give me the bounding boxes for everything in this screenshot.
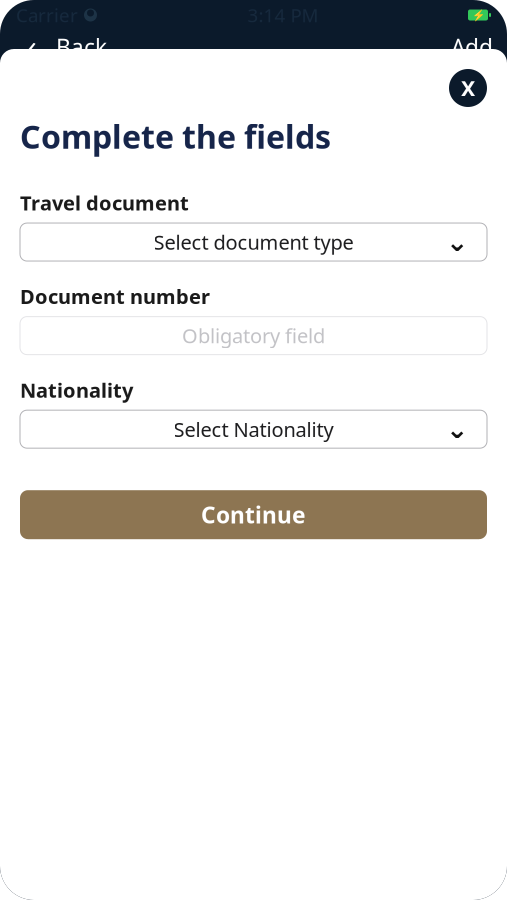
- staticText: Back: [56, 32, 107, 62]
- staticText: 3:14 PM: [247, 3, 318, 27]
- button[interactable]: Obligatory field: [20, 317, 487, 355]
- staticText: Select document type: [153, 229, 353, 255]
- staticText: ⚡: [471, 9, 484, 21]
- staticText: Add: [451, 32, 493, 62]
- staticText: ⌄: [446, 414, 468, 444]
- staticText: Document number: [20, 283, 210, 310]
- staticText: Travel document: [20, 189, 189, 216]
- button[interactable]: Add: [451, 32, 493, 62]
- staticText: Continue: [201, 500, 306, 530]
- button[interactable]: Select Nationality: [20, 410, 487, 448]
- button[interactable]: Back: [14, 32, 48, 62]
- button[interactable]: Select document type: [20, 223, 487, 261]
- button[interactable]: Continue: [20, 490, 487, 539]
- staticText: X: [461, 74, 475, 102]
- staticText: ‹: [25, 17, 37, 77]
- staticText: ⌄: [446, 227, 468, 257]
- staticText: Complete the fields: [20, 115, 331, 157]
- button[interactable]: Close: [449, 69, 487, 107]
- staticText: Nationality: [20, 377, 133, 403]
- staticText: Obligatory field: [182, 322, 325, 349]
- staticText: Carrier: [16, 3, 78, 27]
- staticText: Select Nationality: [173, 416, 333, 442]
